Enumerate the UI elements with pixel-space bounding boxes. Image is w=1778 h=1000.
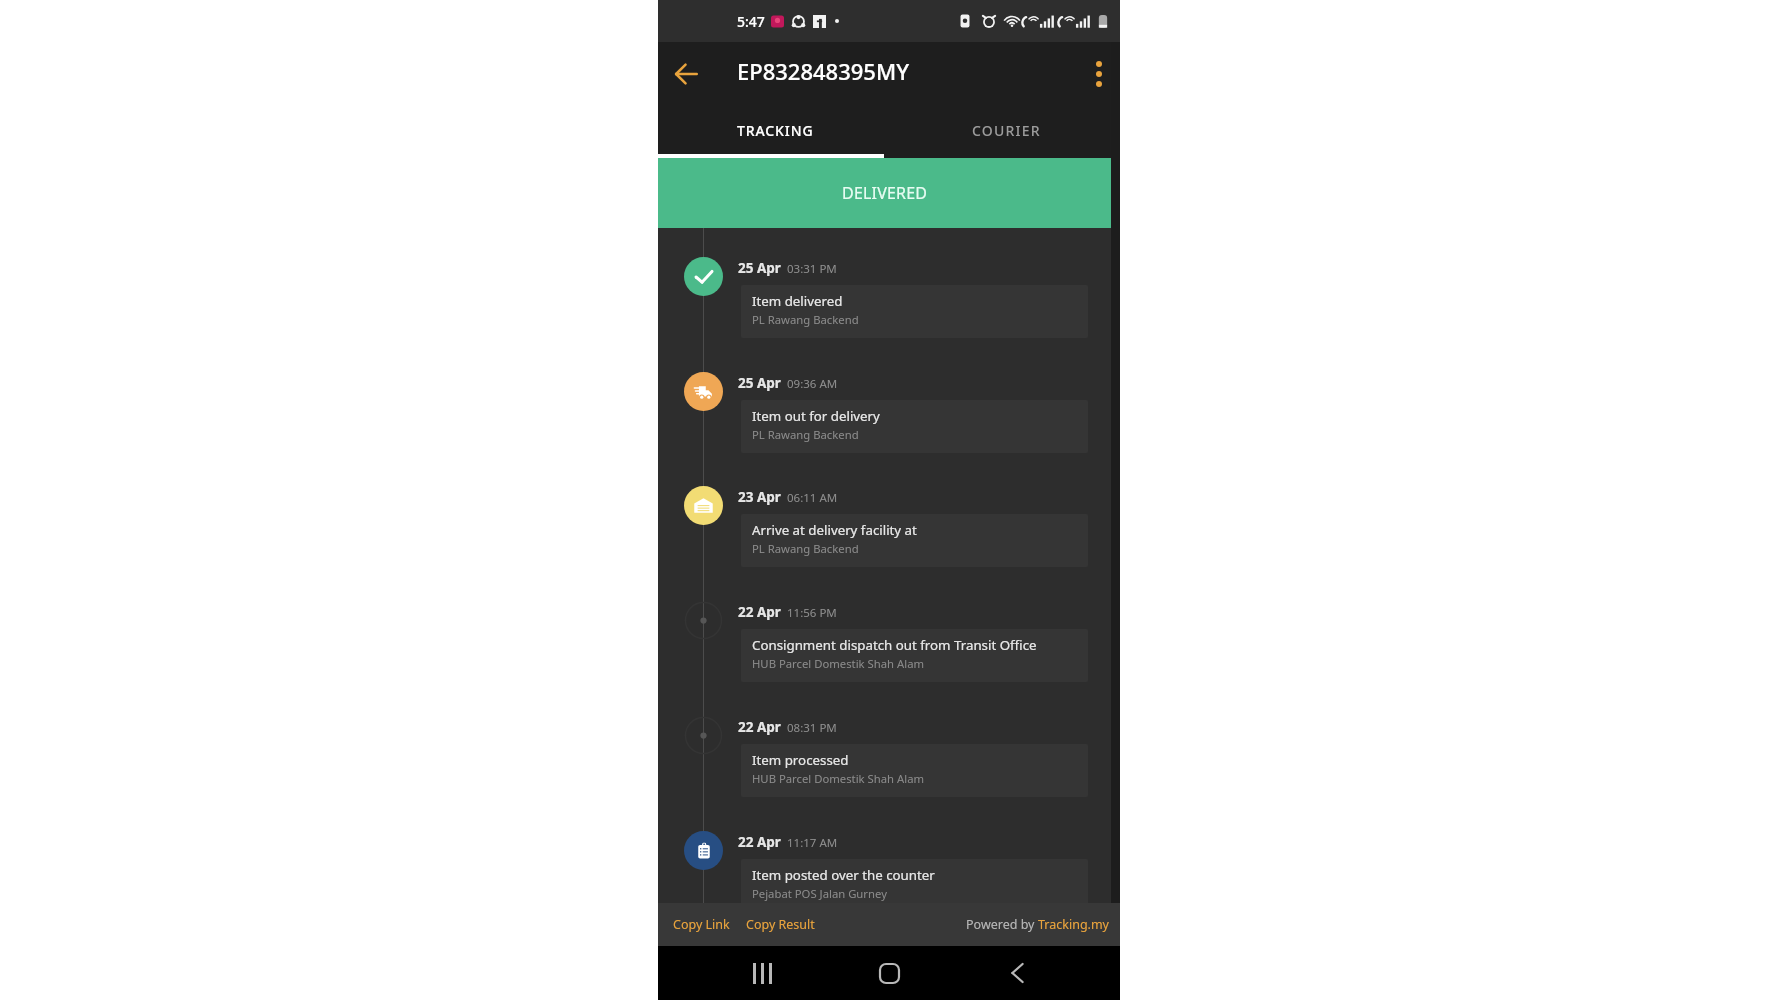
staticText: 25 Apr	[738, 259, 781, 277]
staticText: 09:36 AM	[787, 376, 838, 392]
staticText: PL Rawang Backend	[752, 541, 859, 556]
button[interactable]: 22 Apr	[658, 802, 1111, 917]
button[interactable]: Back	[993, 949, 1041, 997]
staticText: Item processed	[752, 751, 849, 769]
button[interactable]: 25 Apr	[658, 228, 1111, 343]
staticText: 08:31 PM	[787, 720, 837, 736]
staticText: Item posted over the counter	[752, 866, 935, 884]
staticText: 06:11 AM	[787, 490, 838, 506]
staticText: PL Rawang Backend	[752, 312, 859, 327]
button[interactable]: Copy Link	[673, 916, 730, 933]
staticText: Powered by	[966, 916, 1038, 933]
staticText: COURIER	[972, 121, 1041, 140]
staticText: 25 Apr	[738, 374, 781, 392]
staticText: 11:17 AM	[787, 835, 838, 851]
button[interactable]: Copy Result	[746, 916, 815, 933]
button[interactable]: 25 Apr	[658, 343, 1111, 458]
button[interactable]: 22 Apr	[658, 572, 1111, 687]
staticText: 11:56 PM	[787, 605, 837, 621]
button[interactable]: Tracking.my	[1038, 916, 1109, 933]
staticText: Arrive at delivery facility at	[752, 521, 917, 539]
staticText: 5:47	[737, 12, 765, 31]
button[interactable]: 23 Apr	[658, 457, 1111, 572]
button[interactable]: More options	[1075, 50, 1123, 98]
staticText: TRACKING	[737, 121, 814, 140]
staticText: DELIVERED	[842, 182, 928, 204]
button[interactable]: COURIER	[884, 105, 1111, 155]
staticText: HUB Parcel Domestik Shah Alam	[752, 656, 925, 671]
button[interactable]: 22 Apr	[658, 687, 1111, 802]
staticText: Item out for delivery	[752, 407, 880, 425]
staticText: 03:31 PM	[787, 261, 837, 277]
staticText: 22 Apr	[738, 718, 781, 736]
button[interactable]: Home	[865, 949, 913, 997]
staticText: HUB Parcel Domestik Shah Alam	[752, 771, 925, 786]
staticText: 22 Apr	[738, 603, 781, 621]
button[interactable]: Back	[658, 46, 714, 102]
staticText: 23 Apr	[738, 488, 781, 506]
button[interactable]: Recents	[738, 949, 786, 997]
staticText: PL Rawang Backend	[752, 427, 859, 442]
staticText: Pejabat POS Jalan Gurney	[752, 886, 887, 901]
staticText: Consignment dispatch out from Transit Of…	[752, 636, 1037, 654]
staticText: Item delivered	[752, 292, 843, 310]
button[interactable]: TRACKING	[658, 105, 884, 155]
staticText: 22 Apr	[738, 833, 781, 851]
staticText: EP832848395MY	[737, 56, 909, 86]
button[interactable]: DELIVERED	[658, 158, 1111, 228]
